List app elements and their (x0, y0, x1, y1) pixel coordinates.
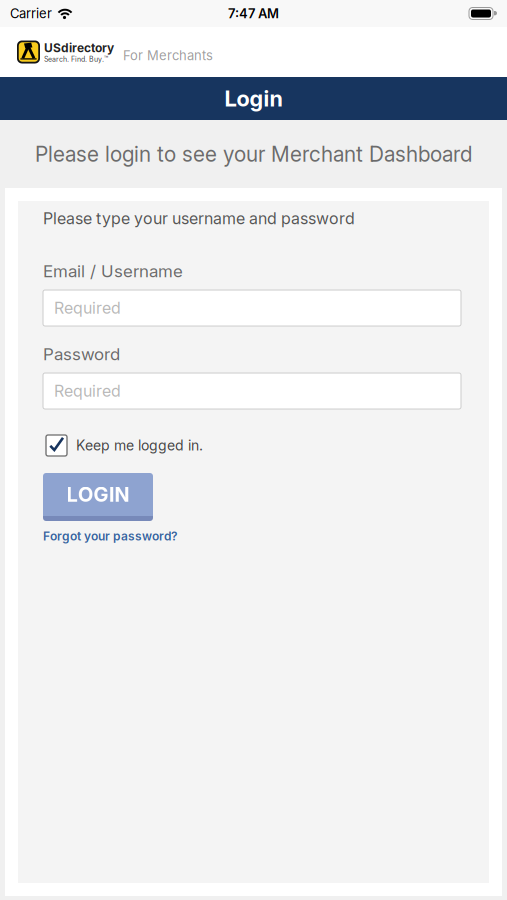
button[interactable]: Forgot your password? (43, 529, 178, 543)
staticText: Search. Find. Buy.™ (44, 55, 108, 63)
staticText: Please login to see your Merchant Dashbo… (35, 142, 472, 166)
staticText: Forgot your password? (43, 529, 178, 543)
staticText: Required (54, 382, 121, 400)
button[interactable]: USdirectory home (17, 40, 114, 63)
staticText: USdirectory (44, 41, 114, 55)
staticText: LOGIN (66, 483, 129, 506)
staticText: Please type your username and password (43, 209, 355, 228)
button[interactable]: Email / Username, Required (43, 290, 461, 326)
staticText: Login (224, 85, 282, 111)
staticText: 7:47 AM (228, 6, 279, 21)
staticText: Keep me logged in. (76, 437, 203, 454)
button[interactable]: LOGIN (43, 473, 153, 521)
staticText: Required (54, 299, 121, 317)
button[interactable]: Keep me logged in. (46, 435, 203, 456)
staticText: Email / Username (43, 261, 183, 281)
staticText: Carrier (10, 6, 52, 21)
button[interactable]: Password, Required (43, 373, 461, 409)
staticText: Password (43, 344, 120, 364)
staticText: For Merchants (123, 48, 213, 63)
